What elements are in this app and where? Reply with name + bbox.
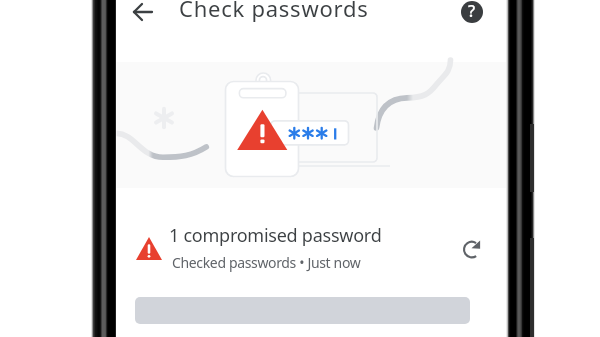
staticText: ? <box>468 1 476 22</box>
staticText: Checked passwords • Just now <box>172 253 361 272</box>
staticText: 1 compromised password <box>169 223 382 248</box>
staticText: Check passwords <box>179 0 369 23</box>
button[interactable]: Help <box>448 0 496 36</box>
button[interactable]: Back <box>119 0 167 36</box>
button[interactable] <box>116 205 508 281</box>
button[interactable]: Refresh <box>448 225 496 273</box>
